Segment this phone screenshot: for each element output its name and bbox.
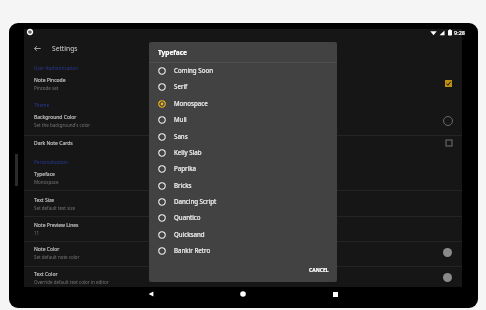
staticText: CANCEL [309, 267, 329, 274]
button[interactable]: Muli [149, 112, 337, 128]
button[interactable]: Kelly Slab [149, 145, 337, 161]
button[interactable]: Paprika [149, 161, 337, 177]
staticText: Bricks [174, 181, 192, 189]
button[interactable]: Sans [149, 129, 337, 145]
staticText: Serif [174, 82, 188, 90]
button[interactable]: Coming Soon [149, 63, 337, 79]
staticText: Muli [174, 115, 187, 123]
staticText: Pincode set [34, 85, 59, 91]
button[interactable]: Note Color [24, 240, 462, 265]
button[interactable]: Background Color [24, 108, 462, 133]
button[interactable]: Recent apps [304, 287, 366, 301]
staticText: Bankir Retro [174, 246, 211, 254]
staticText: Settings [52, 44, 78, 53]
staticText: Typeface [158, 48, 187, 57]
other: Home [240, 291, 246, 297]
button[interactable]: Typeface [24, 165, 462, 190]
staticText: Dancing Script [174, 197, 217, 205]
button[interactable]: Note Preview Lines [24, 216, 462, 241]
button[interactable]: Dancing Script [149, 194, 337, 210]
staticText: Text Color [34, 271, 58, 278]
staticText: Note Color [34, 246, 60, 253]
staticText: Override default text color in editor [34, 279, 109, 285]
staticText: Set the background's color [34, 122, 91, 128]
button[interactable]: Monospace [149, 96, 337, 112]
button[interactable]: Home [212, 287, 274, 301]
staticText: Note Pincode [34, 77, 66, 84]
other: Back [148, 291, 154, 297]
button[interactable]: Quantico [149, 210, 337, 226]
staticText: Coming Soon [174, 66, 213, 74]
button[interactable]: Dark Note Cards [24, 133, 462, 153]
staticText: Kelly Slab [174, 148, 202, 156]
button[interactable]: Bankir Retro [149, 243, 337, 259]
staticText: Note Preview Lines [34, 222, 79, 229]
staticText: Background Color [34, 114, 77, 121]
staticText: Paprika [174, 164, 196, 172]
staticText: 11 [34, 230, 40, 236]
staticText: Personalization [34, 159, 68, 165]
staticText: Theme [34, 102, 50, 108]
button[interactable]: Note Pincode [24, 71, 462, 96]
staticText: User Authentication [34, 65, 79, 71]
button[interactable]: Bricks [149, 178, 337, 194]
staticText: Monospace [34, 179, 59, 185]
staticText: Sans [174, 132, 188, 140]
staticText: Text Size [34, 197, 55, 204]
button[interactable]: Navigate up [30, 41, 44, 55]
staticText: 9:28 [454, 29, 465, 36]
button[interactable]: CANCEL [305, 264, 333, 277]
staticText: Quicksand [174, 230, 205, 238]
button[interactable]: Back [120, 287, 182, 301]
staticText: Monospace [174, 99, 208, 107]
button[interactable]: Text Color [24, 265, 462, 290]
button[interactable]: Serif [149, 79, 337, 95]
staticText: Set default note color [34, 254, 80, 260]
button[interactable]: Text Size [24, 191, 462, 216]
staticText: Set default text size [34, 205, 76, 211]
staticText: Dark Note Cards [34, 140, 73, 147]
staticText: Typeface [34, 171, 55, 178]
staticText: Quantico [174, 213, 201, 221]
button[interactable]: Quicksand [149, 227, 337, 243]
other: Navigate up [34, 45, 41, 52]
